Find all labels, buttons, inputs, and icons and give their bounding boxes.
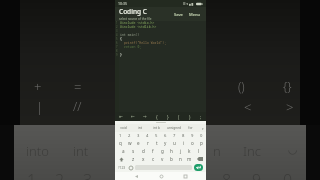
- button[interactable]: void: [115, 124, 131, 132]
- staticText: a: [122, 148, 125, 154]
- staticText: 5: [116, 37, 118, 41]
- button[interactable]: 5: [152, 132, 161, 139]
- button[interactable]: unsigned: [165, 124, 182, 132]
- button[interactable]: ;: [195, 112, 206, 121]
- staticText: l: [198, 148, 200, 154]
- button[interactable]: v: [158, 155, 167, 163]
- button[interactable]: h: [167, 147, 176, 155]
- staticText: ☰ ▾: [183, 2, 188, 6]
- button[interactable]: 1: [115, 21, 206, 112]
- button[interactable]: n: [176, 155, 185, 163]
- staticText: into: [26, 142, 49, 160]
- staticText: #include <stdio.h>: [120, 21, 155, 25]
- staticText: 0: [200, 133, 203, 139]
- staticText: h: [170, 148, 173, 154]
- staticText: c: [152, 156, 155, 162]
- staticText: d: [142, 148, 145, 154]
- button[interactable]: More suggestions: [199, 124, 206, 132]
- staticText: =: [74, 78, 82, 96]
- staticText: select source of the file: [119, 17, 152, 21]
- staticText: ⇤: [119, 114, 123, 119]
- staticText: i: [183, 140, 185, 146]
- button[interactable]: q: [115, 139, 125, 147]
- button[interactable]: for: [182, 124, 199, 132]
- button[interactable]: u: [170, 139, 179, 147]
- staticText: p: [200, 140, 203, 146]
- button[interactable]: Menu: [187, 10, 202, 19]
- staticText: n: [179, 156, 182, 162]
- button[interactable]: 7: [170, 132, 179, 139]
- button[interactable]: s: [128, 147, 138, 155]
- button[interactable]: y: [161, 139, 170, 147]
- button[interactable]: a: [118, 147, 128, 155]
- button[interactable]: k: [185, 147, 194, 155]
- staticText: ?123: [118, 165, 126, 170]
- staticText: →: [143, 114, 147, 119]
- staticText: int: [138, 126, 142, 130]
- button[interactable]: p: [197, 139, 206, 147]
- staticText: 4: [116, 33, 118, 37]
- button[interactable]: Enter: [194, 164, 203, 171]
- button[interactable]: int: [131, 124, 148, 132]
- button[interactable]: ←: [127, 112, 139, 121]
- button[interactable]: t: [152, 139, 161, 147]
- button[interactable]: 4: [143, 132, 152, 139]
- button[interactable]: 6: [161, 132, 170, 139]
- button[interactable]: ?123: [117, 164, 127, 171]
- staticText: w: [128, 140, 132, 146]
- staticText: Coding C: [119, 7, 147, 16]
- button[interactable]: w: [125, 139, 134, 147]
- button[interactable]: Home: [158, 173, 164, 179]
- button[interactable]: Recents: [182, 173, 188, 179]
- button[interactable]: z: [128, 155, 138, 163]
- staticText: printf("Hello World");: [124, 41, 167, 45]
- button[interactable]: x: [138, 155, 148, 163]
- staticText: 8: [182, 133, 185, 139]
- button[interactable]: l: [194, 147, 203, 155]
- staticText: 1: [116, 21, 118, 25]
- staticText: int main(): [120, 33, 140, 37]
- button[interactable]: 2: [125, 132, 134, 139]
- staticText: {}: [283, 78, 292, 94]
- button[interactable]: m: [185, 155, 194, 163]
- button[interactable]: (: [173, 112, 184, 121]
- button[interactable]: r: [143, 139, 152, 147]
- button[interactable]: Emoji: [127, 164, 135, 171]
- button[interactable]: 8: [179, 132, 188, 139]
- button[interactable]: int b: [148, 124, 165, 132]
- staticText: 2: [128, 133, 131, 139]
- button[interactable]: }: [162, 112, 173, 121]
- staticText: Inc: [243, 142, 261, 160]
- button[interactable]: Shift: [115, 155, 128, 163]
- staticText: j: [180, 148, 182, 154]
- button[interactable]: {: [151, 112, 162, 121]
- button[interactable]: o: [188, 139, 197, 147]
- button[interactable]: f: [148, 147, 158, 155]
- button[interactable]: c: [148, 155, 158, 163]
- button[interactable]: i: [179, 139, 188, 147]
- staticText: q: [119, 140, 122, 146]
- button[interactable]: g: [158, 147, 167, 155]
- button[interactable]: 0: [197, 132, 206, 139]
- staticText: o: [191, 140, 194, 146]
- button[interactable]: j: [176, 147, 185, 155]
- button[interactable]: 9: [188, 132, 197, 139]
- staticText: ▾: [202, 127, 204, 130]
- button[interactable]: Save: [172, 10, 185, 19]
- button[interactable]: →: [139, 112, 151, 121]
- button[interactable]: e: [134, 139, 143, 147]
- button[interactable]: 1: [115, 132, 125, 139]
- staticText: 9: [191, 133, 194, 139]
- button[interactable]: Back: [133, 173, 139, 179]
- button[interactable]: d: [138, 147, 148, 155]
- staticText: 6: [116, 41, 118, 45]
- button[interactable]: b: [167, 155, 176, 163]
- button[interactable]: ⇤: [115, 112, 127, 121]
- button[interactable]: ): [184, 112, 195, 121]
- staticText: }: [167, 114, 169, 120]
- button[interactable]: 3: [134, 132, 143, 139]
- button[interactable]: Backspace: [194, 155, 206, 163]
- staticText: x: [142, 156, 145, 162]
- staticText: 7: [116, 45, 118, 49]
